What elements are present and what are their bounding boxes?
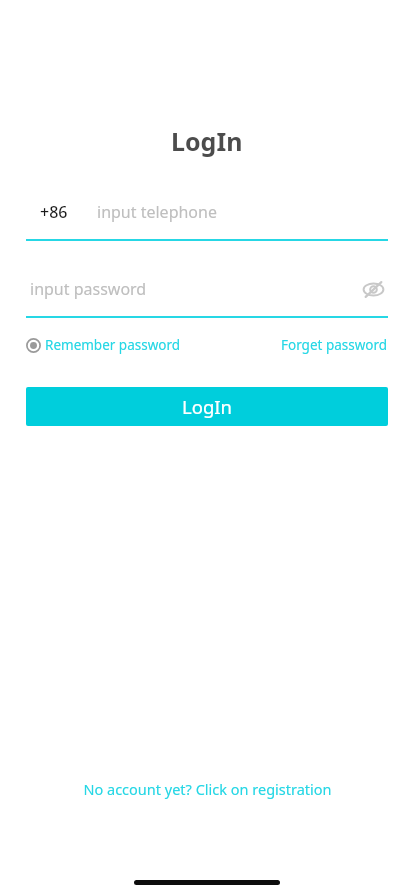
button[interactable]: Show password [358,274,388,304]
button[interactable]: LogIn [26,387,388,426]
button[interactable]: Remember password [26,336,181,354]
staticText: LogIn [171,124,243,158]
button[interactable]: No account yet? Click on registration [83,779,332,799]
staticText: LogIn [182,394,232,419]
staticText: Forget password [281,336,388,354]
button[interactable]: +86 [26,197,388,241]
staticText: input password [30,278,147,300]
staticText: Remember password [45,336,181,354]
staticText: input telephone [97,201,217,223]
staticText: +86 [40,201,68,223]
button[interactable]: Forget password [281,336,388,354]
button[interactable]: input password [26,278,358,300]
staticText: No account yet? Click on registration [83,779,332,799]
